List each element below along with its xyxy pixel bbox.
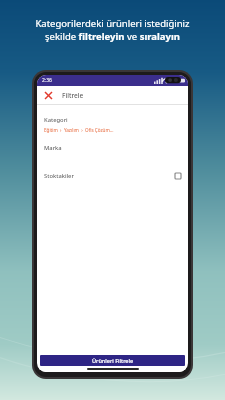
button[interactable]: Ürünleri Filtrele [40, 355, 185, 366]
staticText: Stoktakiler [44, 172, 74, 180]
button[interactable]: Kategori [37, 113, 188, 136]
staticText: Marka [44, 144, 62, 152]
button[interactable]: Kapat [42, 89, 55, 102]
staticText: Filtrele [62, 91, 84, 100]
staticText: Kategori [44, 116, 68, 124]
button[interactable]: Stoktakiler [37, 169, 188, 183]
staticText: Eğitim › Yazılım › Ofis Çözüm... [44, 127, 114, 133]
staticText: 2:36 [42, 77, 52, 84]
staticText: Ürünleri Filtrele [92, 357, 134, 364]
staticText: Kategorilerdeki ürünleri istediğiniz şek… [35, 17, 190, 43]
button[interactable]: Marka [37, 141, 188, 155]
